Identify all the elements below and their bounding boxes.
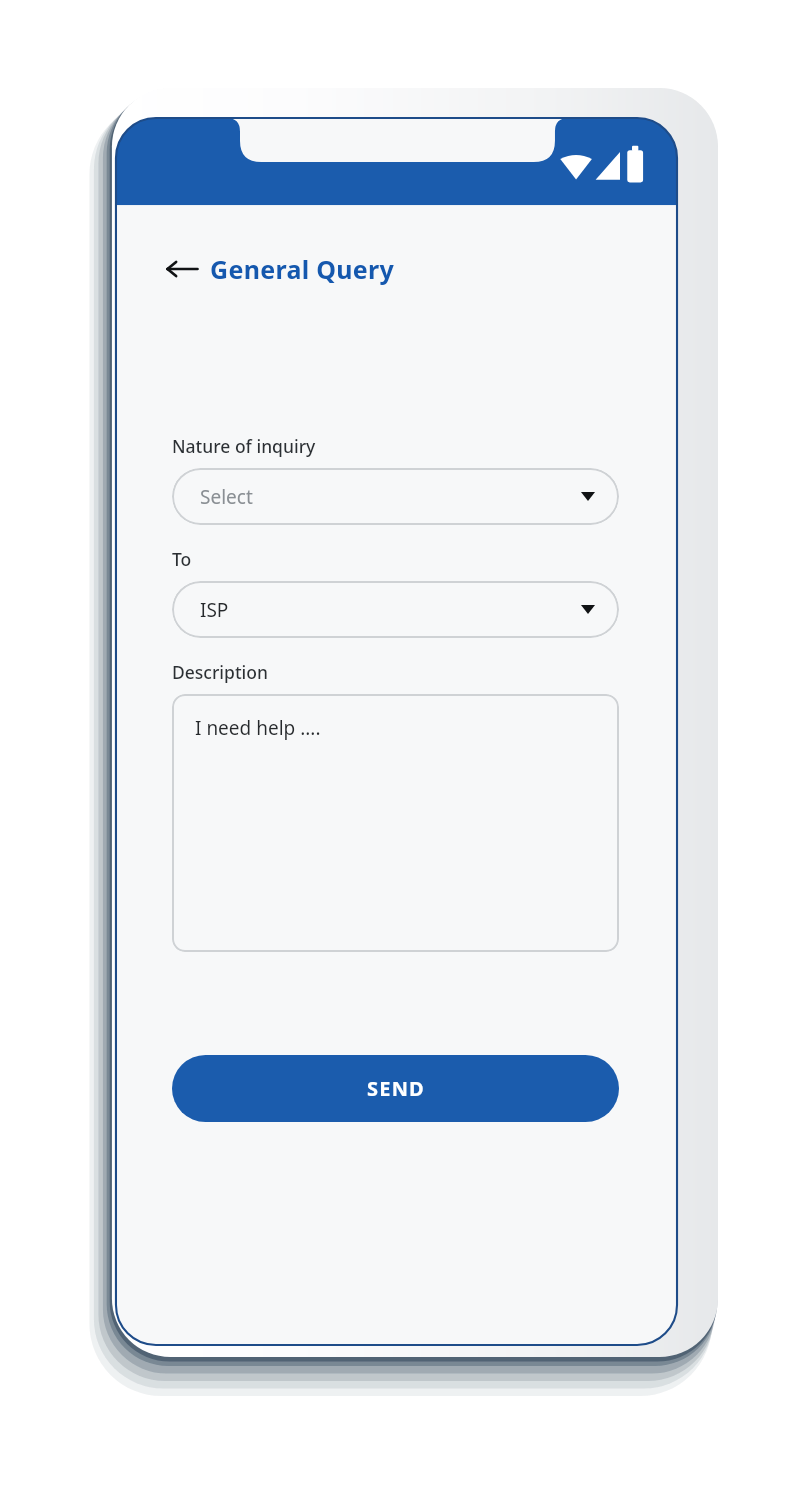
button[interactable]: Back to General Query [166,252,395,286]
staticText: General Query [210,252,395,286]
staticText: I need help .... [195,715,321,741]
button[interactable]: SEND [172,1055,619,1122]
staticText: Select [200,484,253,510]
button[interactable]: ISP [172,581,619,638]
staticText: SEND [367,1075,425,1102]
staticText: Description [172,660,269,684]
button[interactable]: I need help .... [172,694,619,952]
staticText: ISP [200,597,229,623]
button[interactable]: Select [172,468,619,525]
staticText: Nature of inquiry [172,434,316,458]
staticText: To [172,547,192,571]
